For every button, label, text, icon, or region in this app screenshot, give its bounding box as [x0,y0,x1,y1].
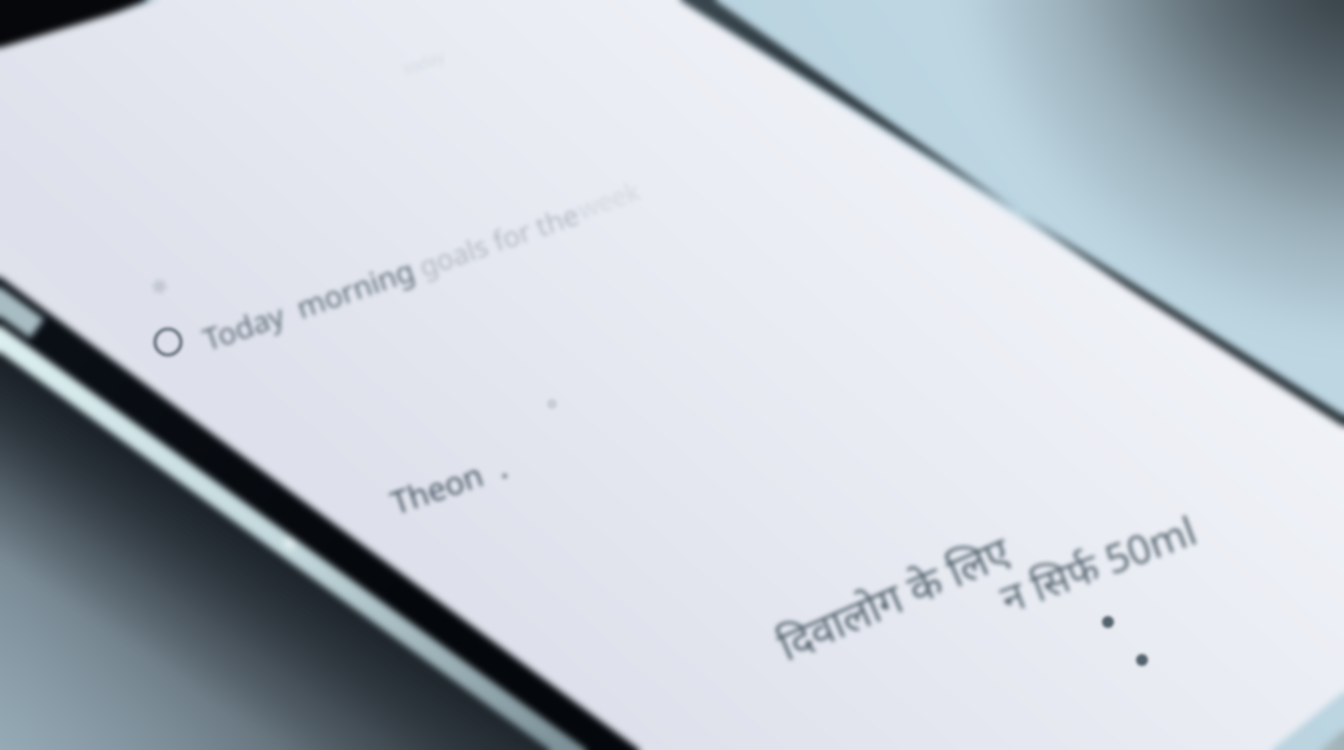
staticText: Theon . [385,444,513,525]
staticText: दिवालोग के लिए [769,521,1019,673]
staticText: goals for the [414,195,584,285]
staticText: week [572,172,644,226]
staticText: ✻ [148,273,171,299]
staticText: Today morning [197,249,420,360]
staticText: न सिर्फ 50ml [992,502,1203,624]
button[interactable]: Phone showing a handwritten note [0,0,1344,750]
